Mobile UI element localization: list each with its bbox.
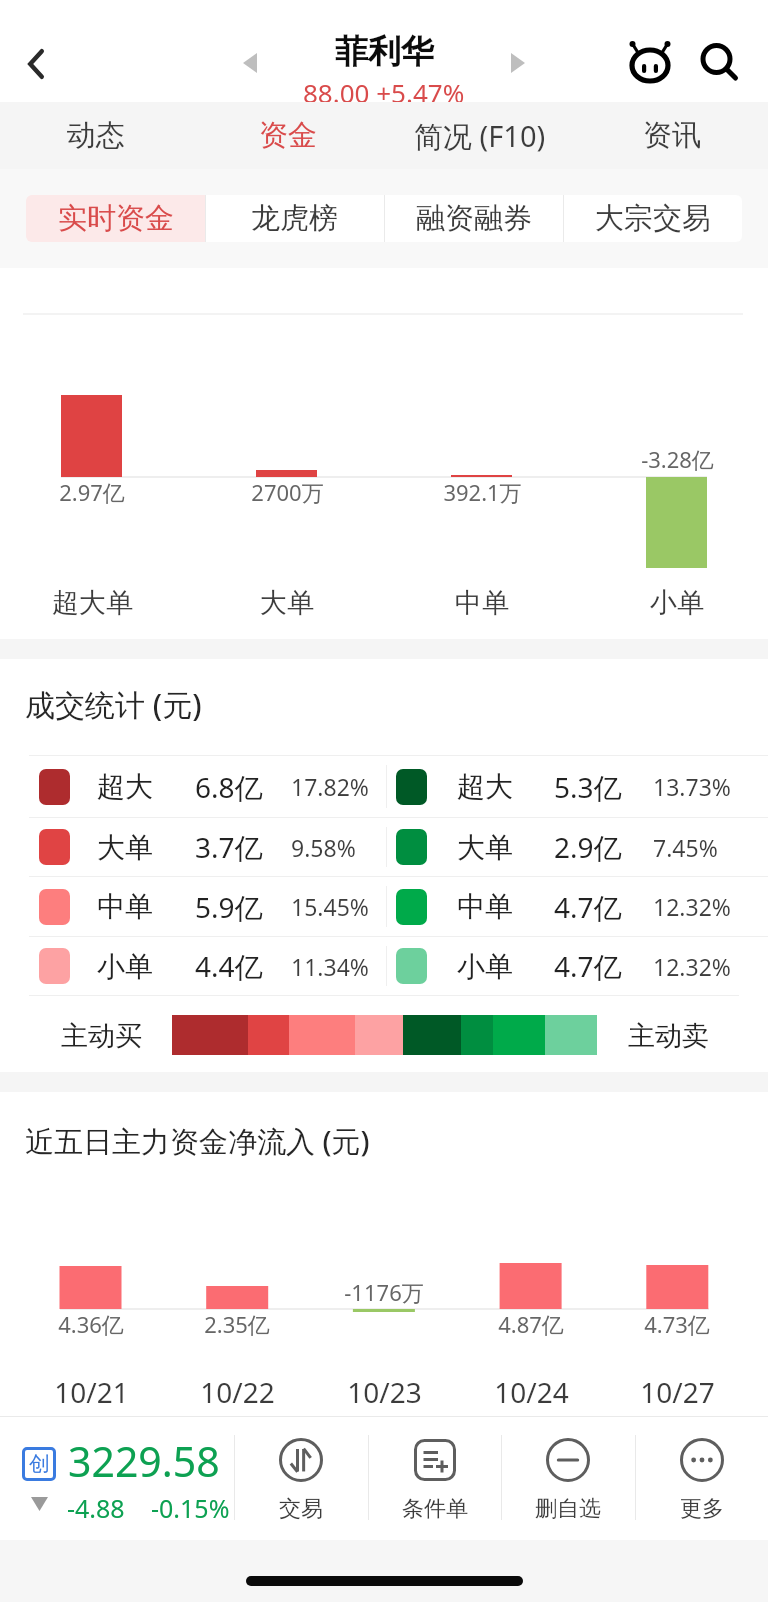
staticText: 4.4亿 [195,947,263,985]
staticText: 近五日主力资金净流入 (元) [25,1121,370,1161]
staticText: 5.9亿 [195,888,263,926]
staticText: 2700万 [251,477,324,507]
button[interactable]: 更多 [635,1417,768,1540]
staticText: 创 [29,1451,50,1477]
button[interactable]: Next stock [494,40,542,86]
staticText: 7.45% [653,832,718,863]
staticText: 13.73% [653,771,731,802]
staticText: 15.45% [291,891,369,922]
button[interactable]: 融资融券 [384,195,563,242]
button[interactable]: 创 [0,1417,234,1540]
button[interactable]: 实时资金 [26,195,205,242]
button[interactable]: 资金 [192,102,384,169]
staticText: -4.88 [67,1491,125,1525]
button[interactable]: 动态 [0,102,192,169]
button[interactable]: Search [688,32,748,92]
button[interactable]: 条件单 [368,1417,502,1540]
staticText: 10/27 [640,1373,715,1411]
button[interactable]: 资讯 [576,102,768,169]
staticText: -0.15% [151,1491,230,1525]
staticText: 392.1万 [443,477,522,507]
staticText: 更多 [680,1495,724,1523]
staticText: 龙虎榜 [251,200,338,237]
staticText: 6.8亿 [195,768,263,806]
staticText: 5.3亿 [554,768,622,806]
staticText: 动态 [67,117,125,154]
button[interactable]: 小单 [0,937,386,995]
staticText: 2.9亿 [554,828,622,866]
staticText: 交易 [279,1495,323,1523]
staticText: 12.32% [653,891,731,922]
staticText: 4.36亿 [58,1309,124,1339]
button[interactable]: 大单 [387,818,768,876]
staticText: 88.00 +5.47% [303,75,465,110]
staticText: 删自选 [535,1495,601,1523]
button[interactable]: 超大 [0,756,386,817]
staticText: 成交统计 (元) [25,684,202,725]
staticText: -3.28亿 [641,444,714,474]
staticText: 3.7亿 [195,828,263,866]
staticText: -1176万 [344,1277,424,1307]
staticText: 简况 (F10) [414,116,546,156]
staticText: 10/22 [200,1373,275,1411]
staticText: 10/21 [54,1373,129,1411]
button[interactable]: Back [9,37,63,91]
staticText: 小单 [457,949,513,984]
button[interactable]: 删自选 [501,1417,635,1540]
button[interactable]: 小单 [387,937,768,995]
staticText: 4.7亿 [554,947,622,985]
staticText: 主动卖 [628,1019,709,1053]
staticText: 实时资金 [58,200,174,237]
staticText: 2.97亿 [59,477,125,507]
button[interactable]: 简况 (F10) [384,102,576,169]
staticText: 融资融券 [416,200,532,237]
staticText: 小单 [97,949,153,984]
button[interactable]: Assistant [620,34,680,94]
staticText: 大单 [97,830,153,865]
button[interactable]: 交易 [234,1417,368,1540]
staticText: 中单 [455,586,509,620]
staticText: 4.73亿 [644,1309,710,1339]
button[interactable]: Previous stock [226,40,274,86]
staticText: 2.35亿 [204,1309,270,1339]
staticText: 大单 [260,586,314,620]
button[interactable]: 大单 [0,818,386,876]
staticText: 中单 [457,889,513,924]
staticText: 资金 [259,117,317,154]
staticText: 大宗交易 [595,200,711,237]
staticText: 主动买 [61,1019,142,1053]
staticText: 9.58% [291,832,356,863]
staticText: 超大 [97,769,153,804]
button[interactable]: 龙虎榜 [205,195,384,242]
staticText: 超大单 [52,586,133,620]
staticText: 条件单 [402,1495,468,1523]
button[interactable]: 大宗交易 [563,195,742,242]
staticText: 小单 [650,586,704,620]
staticText: 17.82% [291,771,369,802]
staticText: 资讯 [643,117,701,154]
staticText: 4.87亿 [498,1309,564,1339]
staticText: 菲利华 [335,31,434,73]
staticText: 10/24 [494,1373,569,1411]
staticText: 中单 [97,889,153,924]
staticText: 12.32% [653,951,731,982]
staticText: 超大 [457,769,513,804]
staticText: 4.7亿 [554,888,622,926]
button[interactable]: 中单 [0,877,386,936]
staticText: 大单 [457,830,513,865]
button[interactable]: 中单 [387,877,768,936]
staticText: 11.34% [291,951,369,982]
button[interactable]: 超大 [387,756,768,817]
staticText: 10/23 [347,1373,422,1411]
staticText: 3229.58 [68,1433,220,1489]
